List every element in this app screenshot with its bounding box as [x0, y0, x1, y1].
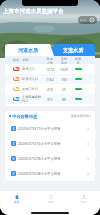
staticText: 排名: [11, 58, 21, 62]
button[interactable]: No.4: [5, 94, 95, 104]
staticText: 上海电视新时代口: [22, 95, 43, 103]
staticText: 410: [43, 87, 57, 92]
staticText: 89: [57, 97, 71, 102]
staticText: No.3: [14, 87, 20, 91]
staticText: 苏州河入口: [22, 77, 43, 81]
staticText: 1274: [43, 67, 57, 72]
staticText: 超警 度: [71, 57, 85, 64]
staticText: 监测: [48, 200, 54, 204]
button[interactable]: 首页: [0, 191, 34, 207]
button[interactable]: No.2: [5, 74, 95, 84]
button[interactable]: 2023年07月10日水平台报警: [11, 136, 90, 151]
button[interactable]: No.3: [5, 84, 95, 94]
staticText: 名称: [22, 58, 43, 62]
staticText: 支流水质: [63, 47, 83, 53]
staticText: No.2: [14, 77, 20, 81]
staticText: 2023年07月09日水平台报警: [18, 156, 61, 161]
staticText: 35: [57, 87, 71, 92]
staticText: No.4: [14, 97, 20, 101]
staticText: 2023年07月10日水平台报警: [18, 141, 61, 146]
staticText: 河道水质: [18, 47, 38, 53]
button[interactable]: 2023年07月11日水平台报警: [11, 121, 90, 136]
button[interactable]: 2023年07月08日水平台报警: [11, 166, 90, 181]
staticText: 黄浦江口: [22, 67, 43, 71]
staticText: 193: [57, 77, 71, 82]
button[interactable]: 2023年07月09日水平台报警: [11, 151, 90, 166]
staticText: 首页: [14, 200, 20, 204]
staticText: 上海市河道水质监测平台: [3, 8, 64, 15]
staticText: 2023年07月08日水平台报警: [18, 171, 61, 176]
staticText: 2023年07月11日水平台报警: [18, 126, 61, 131]
button[interactable]: 支流水质: [50, 44, 95, 56]
staticText: 我的: [81, 200, 87, 204]
staticText: 实时 单元: [57, 57, 71, 64]
staticText: 吴淞口支行: [22, 87, 43, 91]
staticText: 1162: [43, 77, 57, 82]
button[interactable]: More options: [78, 16, 97, 24]
staticText: No.1: [14, 67, 20, 71]
button[interactable]: 监测: [34, 191, 67, 207]
button[interactable]: 我的: [67, 191, 100, 207]
staticText: 更多告警信息 >: [71, 114, 92, 118]
staticText: 监测 人数: [43, 57, 57, 64]
button[interactable]: 河道水质: [5, 44, 50, 56]
button[interactable]: No.1: [5, 64, 95, 74]
staticText: 1220: [57, 67, 71, 72]
staticText: 311: [43, 97, 57, 102]
staticText: 平台告警信息: [12, 114, 38, 119]
